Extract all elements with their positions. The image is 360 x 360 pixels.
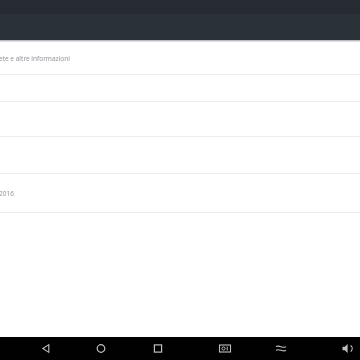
- button[interactable]: ete e altre informazioni: [0, 42, 360, 74]
- button[interactable]: Recent apps: [147, 337, 169, 360]
- button[interactable]: Back: [35, 337, 57, 360]
- button[interactable]: Volume: [336, 337, 358, 360]
- staticText: ete e altre informazioni: [0, 54, 70, 63]
- button[interactable]: Home: [90, 337, 112, 360]
- staticText: 2016: [0, 189, 14, 198]
- button[interactable]: 2016: [0, 174, 360, 212]
- button[interactable]: Gestures: [270, 337, 292, 360]
- button[interactable]: Screenshot: [214, 337, 236, 360]
